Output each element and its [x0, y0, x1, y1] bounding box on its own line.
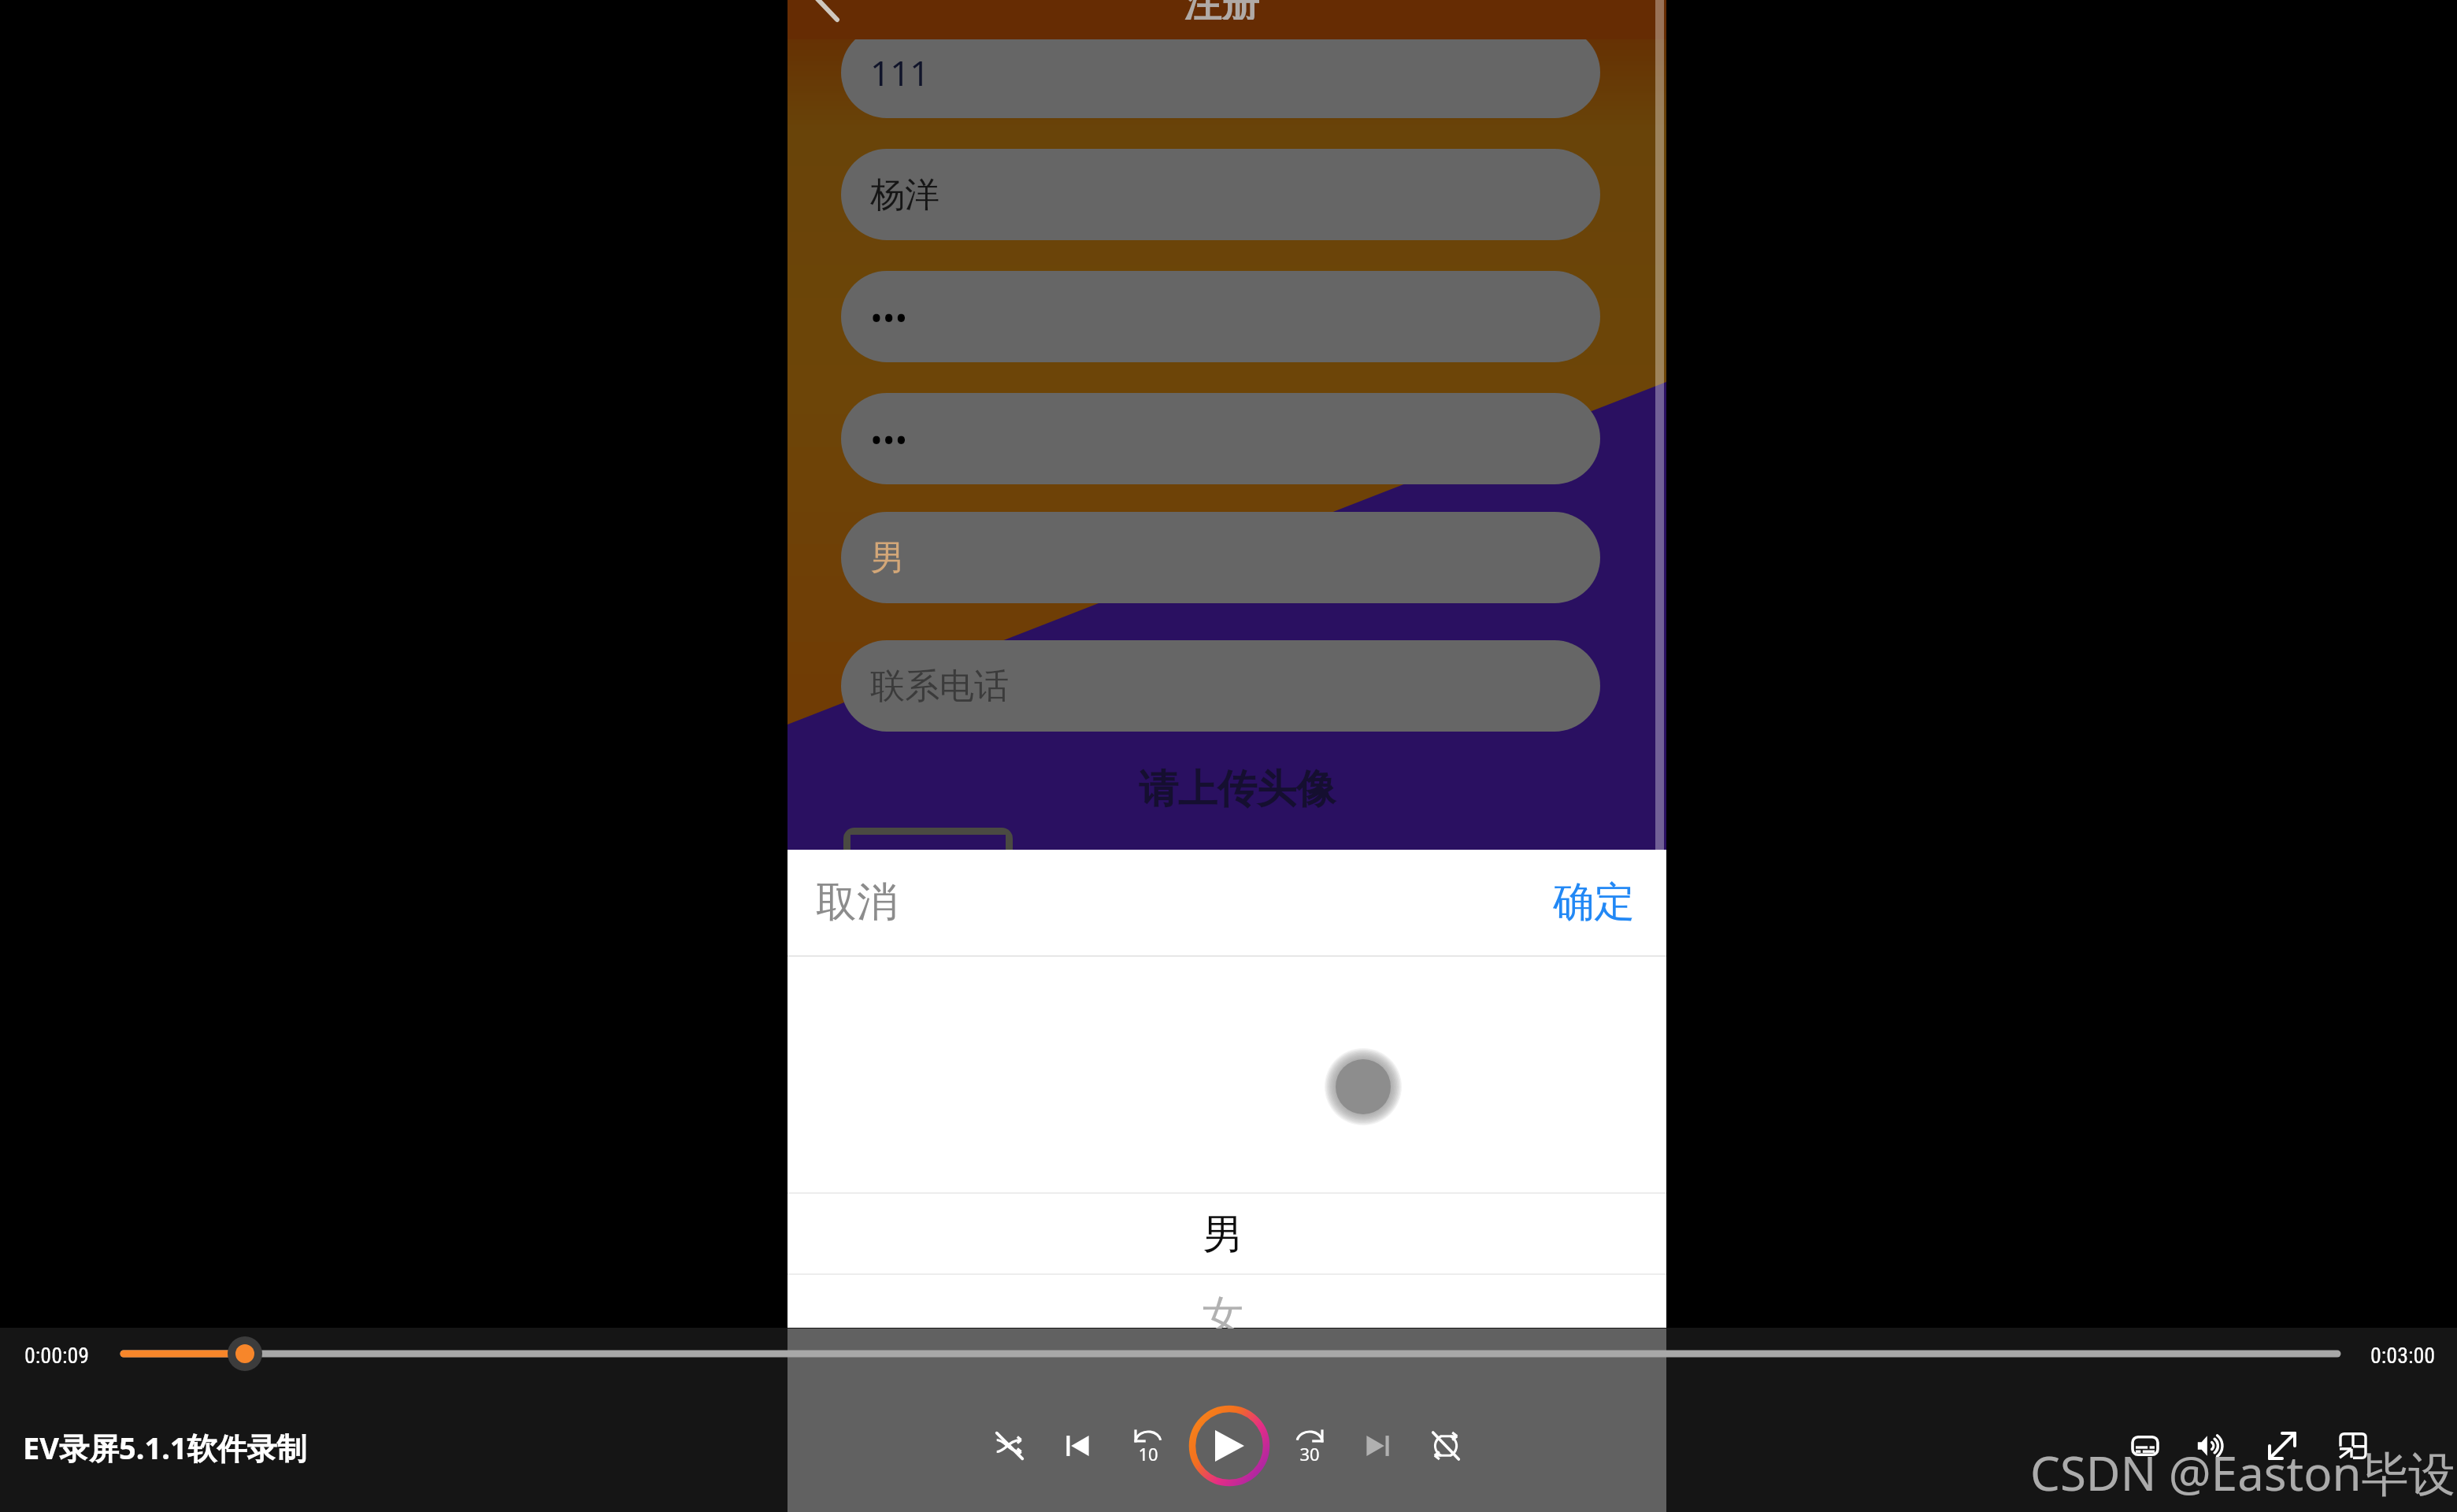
button[interactable]: Next [1364, 1432, 1391, 1459]
staticText: EV录屏5.1.1软件录制 [23, 1427, 307, 1468]
button[interactable]: Previous [1065, 1432, 1091, 1459]
staticText: 0:00:09 [24, 1343, 90, 1369]
staticText: 注册 [1184, 0, 1259, 20]
button[interactable]: Forward 30 seconds [1294, 1430, 1325, 1462]
staticText: ••• [870, 295, 908, 339]
staticText: ••• [870, 417, 908, 461]
button[interactable]: Rewind 10 seconds [1132, 1430, 1164, 1462]
button[interactable]: 确定 [1553, 876, 1666, 928]
staticText: 111 [870, 49, 930, 96]
button[interactable]: Picture in picture [2337, 1430, 2369, 1462]
staticText: 男 [870, 536, 905, 580]
staticText: 请上传头像 [798, 765, 1677, 814]
staticText: 0:03:00 [2370, 1343, 2436, 1369]
button[interactable]: 111 [841, 27, 1600, 118]
button[interactable]: Seek bar, 0:00:09 of 0:03:00 [115, 1334, 2342, 1373]
button[interactable]: Volume [2197, 1430, 2229, 1462]
button[interactable]: 杨洋 [841, 149, 1600, 240]
button[interactable]: 男 [841, 512, 1600, 603]
button[interactable]: Upload avatar [850, 835, 1006, 931]
staticText: CSDN @Easton毕设 [2030, 1440, 2456, 1505]
button[interactable]: 取消 [787, 876, 898, 928]
button[interactable]: Shuffle off [996, 1432, 1023, 1459]
button[interactable]: 联系电话 [841, 640, 1600, 732]
button[interactable]: Back [794, 0, 850, 39]
staticText: 30 [1286, 1442, 1333, 1466]
staticText: 杨洋 [870, 173, 939, 217]
button[interactable]: Subtitles [2129, 1430, 2161, 1462]
button[interactable]: Play [1188, 1405, 1270, 1487]
staticText: 男 [784, 1209, 1662, 1261]
staticText: 10 [1125, 1442, 1172, 1466]
button[interactable]: Fullscreen [2266, 1430, 2298, 1462]
button[interactable]: ••• [841, 271, 1600, 362]
staticText: 女 [784, 1290, 1662, 1342]
button[interactable]: Repeat off [1432, 1432, 1459, 1459]
button[interactable]: ••• [841, 393, 1600, 484]
staticText: 联系电话 [870, 665, 1009, 708]
